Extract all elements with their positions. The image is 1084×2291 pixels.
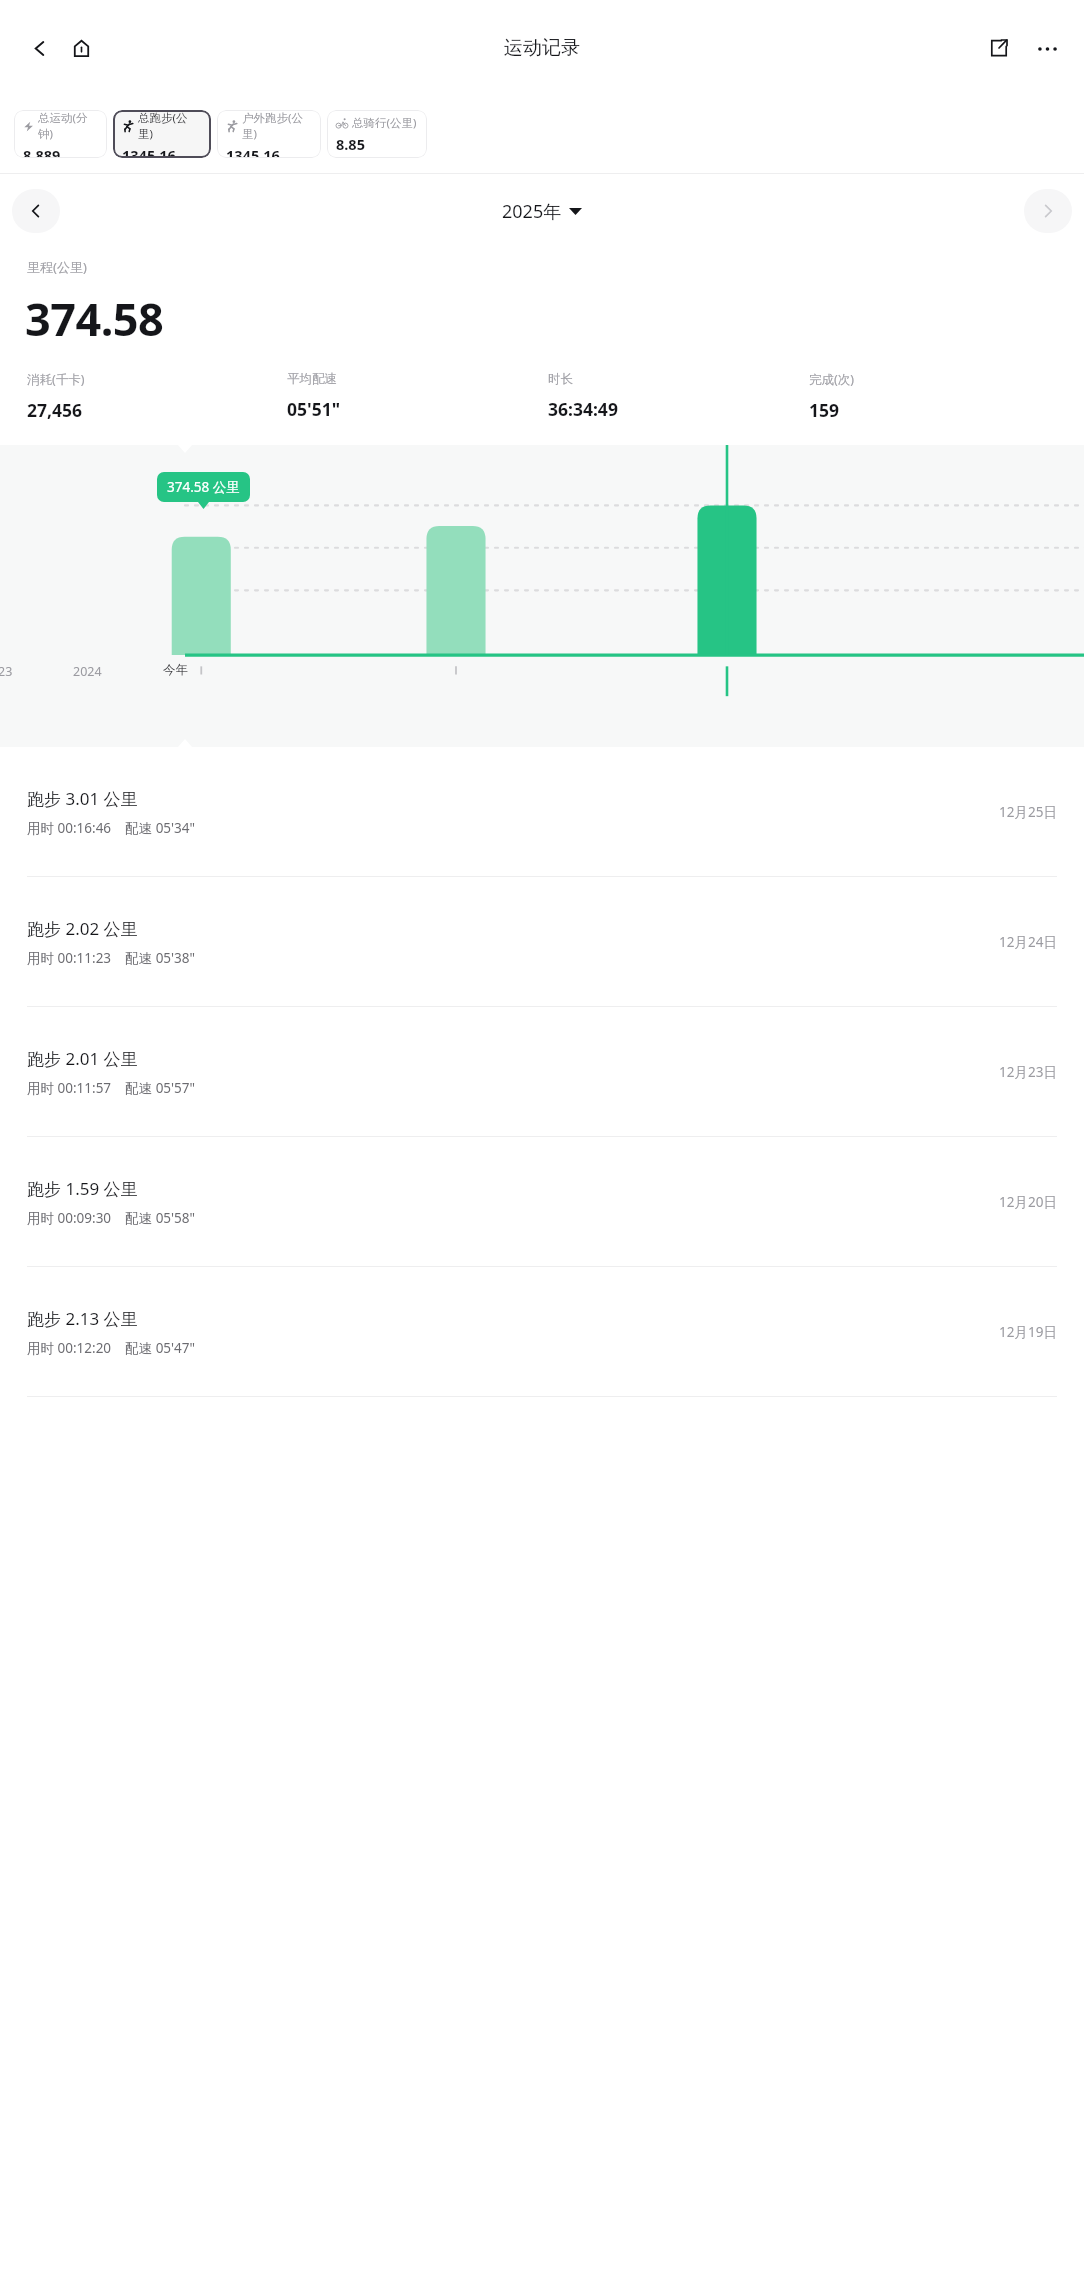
button[interactable]: 跑步 1.59 公里	[0, 1137, 1084, 1267]
staticText: 1345.16	[122, 145, 176, 158]
button[interactable]: 总运动(分钟)	[14, 110, 107, 158]
button[interactable]: 跑步 2.13 公里	[0, 1267, 1084, 1397]
staticText: 12月25日	[999, 803, 1057, 821]
staticText: 05'51"	[287, 397, 341, 421]
staticText: 用时 00:12:20 配速 05'47"	[27, 1339, 196, 1357]
staticText: 跑步 1.59 公里	[27, 1177, 138, 1200]
staticText: 23	[0, 663, 13, 680]
staticText: 消耗(千卡)	[27, 371, 85, 388]
staticText: 户外跑步(公里)	[242, 110, 312, 142]
staticText: 8,889	[23, 145, 61, 158]
staticText: 1345.16	[226, 145, 280, 158]
staticText: 用时 00:09:30 配速 05'58"	[27, 1209, 196, 1227]
staticText: 总跑步(公里)	[138, 110, 202, 142]
button[interactable]: Back	[22, 31, 56, 65]
button[interactable]: Previous year	[12, 189, 60, 233]
staticText: 27,456	[27, 398, 83, 422]
staticText: 12月19日	[999, 1323, 1057, 1341]
button[interactable]: 跑步 2.01 公里	[0, 1007, 1084, 1137]
button[interactable]: 2025年	[502, 199, 582, 224]
button[interactable]: 户外跑步(公里)	[217, 110, 321, 158]
staticText: 用时 00:11:23 配速 05'38"	[27, 949, 196, 967]
staticText: 12月24日	[999, 933, 1057, 951]
staticText: 374.58 公里	[167, 478, 240, 496]
staticText: 12月23日	[999, 1063, 1057, 1081]
button[interactable]: 跑步 3.01 公里	[0, 747, 1084, 877]
staticText: 时长	[548, 371, 573, 387]
staticText: 跑步 2.01 公里	[27, 1047, 138, 1070]
button[interactable]: More options	[1030, 31, 1064, 65]
staticText: 2024	[73, 663, 102, 680]
staticText: 8.85	[336, 134, 365, 154]
staticText: 159	[809, 398, 840, 422]
staticText: 跑步 2.02 公里	[27, 917, 138, 940]
staticText: 总运动(分钟)	[38, 110, 98, 142]
button[interactable]: Home	[64, 31, 98, 65]
staticText: 总骑行(公里)	[352, 115, 417, 131]
staticText: 跑步 2.13 公里	[27, 1307, 138, 1330]
staticText: 12月20日	[999, 1193, 1057, 1211]
staticText: 2025年	[502, 199, 562, 224]
button[interactable]: Next year	[1024, 189, 1072, 233]
button[interactable]: 总跑步(公里)	[113, 110, 211, 158]
button[interactable]: 总骑行(公里)	[327, 110, 427, 158]
button[interactable]: Share	[982, 31, 1016, 65]
staticText: 平均配速	[287, 371, 337, 387]
staticText: 完成(次)	[809, 371, 855, 388]
staticText: 今年	[163, 662, 188, 678]
button[interactable]: 跑步 2.02 公里	[0, 877, 1084, 1007]
staticText: 运动记录	[504, 36, 580, 60]
staticText: 用时 00:16:46 配速 05'34"	[27, 819, 196, 837]
staticText: 36:34:49	[548, 397, 618, 421]
staticText: 跑步 3.01 公里	[27, 787, 138, 810]
staticText: 374.58	[25, 288, 164, 349]
staticText: 用时 00:11:57 配速 05'57"	[27, 1079, 196, 1097]
staticText: 里程(公里)	[27, 258, 87, 276]
